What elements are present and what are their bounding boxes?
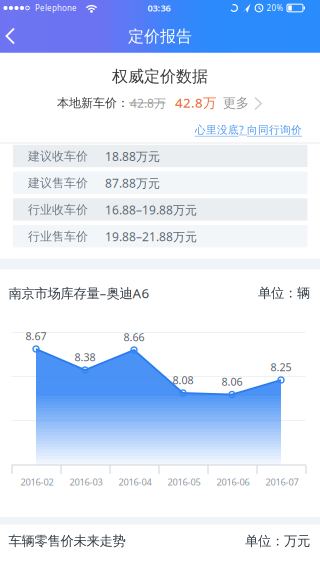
staticText: 心里没底? 向同行询价 xyxy=(195,122,302,137)
staticText: 行业收车价 xyxy=(28,202,88,217)
staticText: 定价报告 xyxy=(128,27,192,46)
staticText: 单位：万元 xyxy=(245,533,310,549)
staticText: 8.06 xyxy=(221,374,242,389)
staticText: 03:36 xyxy=(147,2,170,14)
staticText: 2016-07 xyxy=(265,476,298,488)
button[interactable]: 更多 xyxy=(219,90,283,116)
staticText: 建议售车价 xyxy=(28,176,88,190)
staticText: 8.08 xyxy=(172,373,193,387)
staticText: 19.88–21.88万元 xyxy=(105,229,197,244)
staticText: 8.38 xyxy=(74,350,95,364)
staticText: 行业售车价 xyxy=(28,229,88,244)
staticText: 16.88–19.88万元 xyxy=(105,202,197,218)
button[interactable]: Back xyxy=(2,21,28,51)
staticText: 2016-06 xyxy=(216,476,249,488)
staticText: 建议收车价 xyxy=(28,149,88,164)
staticText: Pelephone xyxy=(35,3,77,13)
staticText: 8.67 xyxy=(25,329,46,343)
staticText: 权威定价数据 xyxy=(112,67,208,86)
staticText: 8.25 xyxy=(270,360,291,374)
staticText: 18.88万元 xyxy=(105,148,160,164)
staticText: 单位：辆 xyxy=(258,285,310,301)
staticText: 8.66 xyxy=(123,330,144,344)
staticText: 2016-04 xyxy=(118,476,151,488)
staticText: 本地新车价： xyxy=(57,96,129,110)
staticText: 2016-05 xyxy=(167,476,200,488)
staticText: 更多 xyxy=(223,95,249,111)
staticText: 42.8万 xyxy=(130,95,166,111)
staticText: 南京市场库存量–奥迪A6 xyxy=(8,284,149,302)
staticText: 2016-03 xyxy=(69,476,102,488)
staticText: 2016-02 xyxy=(20,476,53,488)
staticText: 20% xyxy=(266,3,283,13)
staticText: 42.8万 xyxy=(175,94,216,111)
button[interactable]: 心里没底? 向同行询价 xyxy=(191,118,306,141)
staticText: 87.88万元 xyxy=(105,175,160,191)
staticText: 车辆零售价未来走势 xyxy=(8,533,125,549)
